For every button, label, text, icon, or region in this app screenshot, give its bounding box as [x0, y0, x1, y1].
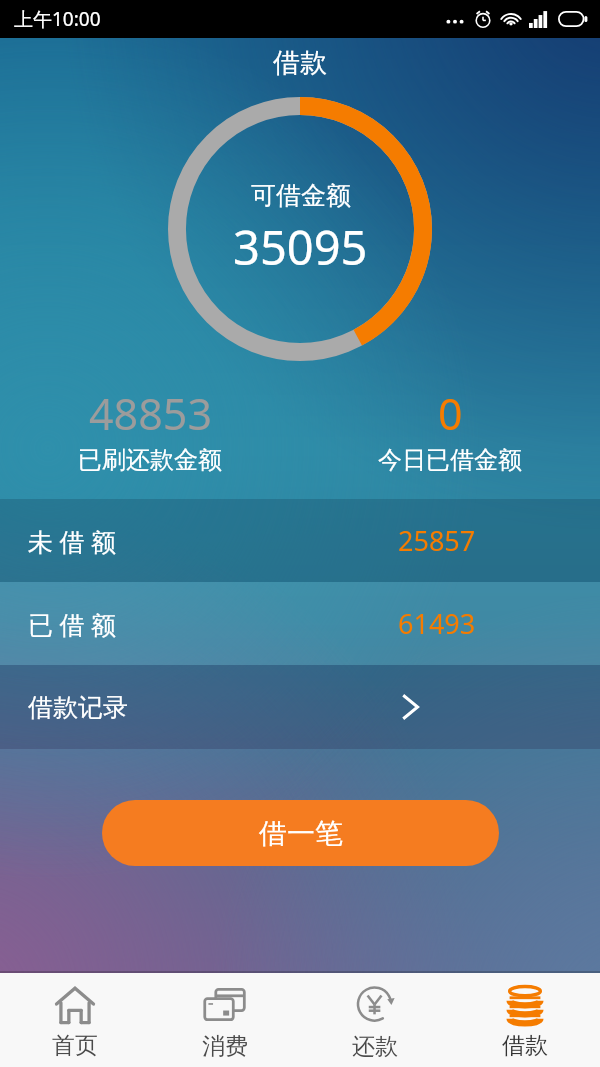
staticText: 借款记录 [28, 692, 128, 723]
button[interactable]: 借款记录 [0, 665, 600, 749]
staticText: 可借金额 [251, 180, 351, 211]
staticText: 61493 [398, 605, 476, 642]
staticText: 35095 [233, 215, 368, 279]
staticText: 0 [438, 384, 463, 443]
other: 消费 [202, 982, 248, 1028]
staticText: 48853 [89, 384, 212, 443]
button[interactable]: 消费 [150, 973, 300, 1067]
staticText: 已刷还款金额 [78, 445, 222, 475]
other: 首页 [53, 983, 97, 1027]
staticText: 借款 [502, 1031, 548, 1060]
staticText: 25857 [398, 522, 476, 559]
staticText: 首页 [52, 1031, 98, 1060]
staticText: 借一笔 [259, 816, 343, 851]
button[interactable]: 借款 [450, 973, 600, 1067]
button[interactable]: 借一笔 [102, 800, 499, 866]
other: 还款 [352, 982, 398, 1028]
button[interactable]: 还款 [300, 973, 450, 1067]
staticText: 今日已借金额 [378, 445, 522, 475]
button[interactable]: 未 借 额 [0, 499, 600, 582]
staticText: 已 借 额 [28, 607, 117, 641]
other: 借款 [503, 983, 547, 1027]
staticText: 借款 [273, 46, 327, 80]
staticText: 消费 [202, 1032, 248, 1061]
staticText: 上午10:00 [14, 6, 101, 32]
button[interactable]: 首页 [0, 973, 150, 1067]
staticText: 还款 [352, 1032, 398, 1061]
button[interactable]: 已 借 额 [0, 582, 600, 665]
staticText: 未 借 额 [28, 524, 117, 558]
